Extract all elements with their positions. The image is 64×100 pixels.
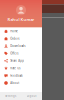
- staticText: Offers: [10, 52, 18, 55]
- button[interactable]: About: [0, 79, 42, 87]
- button[interactable]: Home: [0, 27, 42, 35]
- staticText: Downloads: [10, 44, 25, 48]
- staticText: Rahul Kumar: [7, 17, 34, 22]
- staticText: About: [10, 81, 19, 85]
- staticText: Logout: [26, 94, 36, 98]
- staticText: Rate Us: [10, 66, 20, 70]
- staticText: Home: [10, 29, 18, 33]
- staticText: Orders: [10, 37, 19, 40]
- button[interactable]: Share App: [0, 57, 42, 64]
- button[interactable]: Downloads: [0, 42, 42, 50]
- button[interactable]: Logout: [21, 92, 42, 100]
- button[interactable]: Profile: [0, 0, 42, 27]
- button[interactable]: Settings: [0, 92, 21, 100]
- button[interactable]: Rate Us: [0, 64, 42, 72]
- button[interactable]: Orders: [0, 35, 42, 42]
- button[interactable]: Feedback: [0, 72, 42, 79]
- staticText: Share App: [10, 59, 24, 62]
- button[interactable]: Offers: [0, 50, 42, 57]
- staticText: Feedback: [10, 74, 22, 77]
- staticText: Settings: [5, 94, 16, 98]
